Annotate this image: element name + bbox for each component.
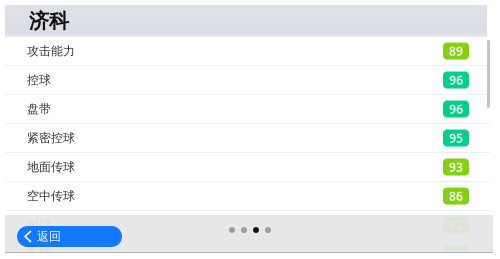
staticText: 盘带 bbox=[27, 102, 51, 116]
staticText: 头球 bbox=[27, 247, 51, 259]
button[interactable]: 地面传球 bbox=[5, 153, 493, 182]
staticText: 控球 bbox=[27, 73, 51, 87]
staticText: 地面传球 bbox=[27, 160, 75, 174]
button[interactable]: 攻击能力 bbox=[5, 37, 493, 66]
staticText: 95 bbox=[449, 130, 463, 146]
staticText: 93 bbox=[449, 159, 463, 175]
button[interactable]: 射门 bbox=[5, 211, 493, 240]
staticText: 空中传球 bbox=[27, 189, 75, 203]
staticText: 紧密控球 bbox=[27, 131, 75, 145]
button[interactable]: 盘带 bbox=[5, 95, 493, 124]
button[interactable]: 紧密控球 bbox=[5, 124, 493, 153]
button[interactable]: 空中传球 bbox=[5, 182, 493, 211]
staticText: 89 bbox=[449, 43, 463, 59]
button[interactable]: 控球 bbox=[5, 66, 493, 95]
staticText: 96 bbox=[449, 101, 463, 117]
button[interactable]: 返回 bbox=[17, 226, 122, 247]
staticText: 96 bbox=[449, 72, 463, 88]
staticText: 返回 bbox=[37, 229, 61, 244]
staticText: 济科 bbox=[29, 9, 69, 33]
staticText: 71 bbox=[449, 246, 463, 259]
button[interactable]: 头球 bbox=[5, 240, 493, 259]
staticText: 86 bbox=[449, 188, 463, 204]
staticText: 92 bbox=[449, 217, 463, 233]
staticText: 攻击能力 bbox=[27, 44, 75, 58]
staticText: 射门 bbox=[27, 218, 51, 232]
